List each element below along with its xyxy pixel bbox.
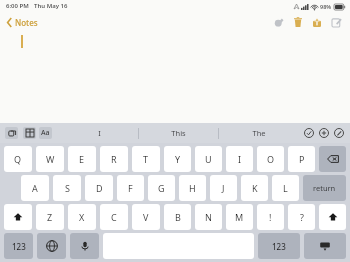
staticText: This xyxy=(171,128,186,138)
staticText: ? xyxy=(300,211,304,223)
staticText: E xyxy=(79,153,85,165)
staticText: U xyxy=(205,153,212,165)
button[interactable]: Shift xyxy=(4,204,32,230)
button[interactable]: Checklist xyxy=(303,127,315,139)
staticText: The xyxy=(252,128,266,138)
staticText: P xyxy=(299,153,305,165)
button[interactable]: New note xyxy=(328,14,344,30)
button[interactable]: 123 xyxy=(258,233,300,259)
staticText: G xyxy=(158,182,165,194)
staticText: K xyxy=(252,182,258,194)
button[interactable]: J xyxy=(210,175,237,201)
button[interactable]: Hide keyboard xyxy=(304,233,346,259)
button[interactable]: Notes xyxy=(4,15,41,30)
staticText: 123 xyxy=(272,241,286,252)
button[interactable]: return xyxy=(303,175,346,201)
button[interactable]: B xyxy=(164,204,191,230)
staticText: A xyxy=(32,182,38,194)
staticText: X xyxy=(79,211,85,223)
button[interactable]: Z xyxy=(36,204,64,230)
staticText: Q xyxy=(14,153,22,165)
button[interactable]: Undo xyxy=(5,127,18,139)
staticText: M xyxy=(235,211,244,223)
button[interactable]: Y xyxy=(164,146,191,172)
button[interactable]: Change keyboard xyxy=(37,233,66,259)
button[interactable]: E xyxy=(68,146,96,172)
button[interactable]: P xyxy=(288,146,315,172)
button[interactable]: Draw xyxy=(333,127,345,139)
button[interactable]: F xyxy=(117,175,144,201)
staticText: N xyxy=(205,211,212,223)
staticText: Aa xyxy=(41,128,50,138)
button[interactable]: Q xyxy=(4,146,32,172)
staticText: O xyxy=(267,153,275,165)
button[interactable]: Text format xyxy=(39,127,52,139)
button[interactable]: ? xyxy=(288,204,315,230)
staticText: L xyxy=(283,182,288,194)
staticText: Thu May 16 xyxy=(34,2,68,10)
button[interactable]: O xyxy=(257,146,284,172)
staticText: ! xyxy=(269,211,272,223)
staticText: Notes xyxy=(15,17,38,28)
button[interactable]: D xyxy=(85,175,113,201)
staticText: B xyxy=(175,211,181,223)
button[interactable]: W xyxy=(36,146,64,172)
button[interactable]: G xyxy=(148,175,175,201)
staticText: I xyxy=(98,128,101,138)
button[interactable]: H xyxy=(179,175,206,201)
button[interactable]: N xyxy=(195,204,222,230)
staticText: T xyxy=(143,153,149,165)
staticText: S xyxy=(65,182,70,194)
button[interactable]: I xyxy=(226,146,253,172)
button[interactable]: Add attachment xyxy=(318,127,330,139)
button[interactable]: Markup xyxy=(271,14,287,30)
button[interactable]: Backspace xyxy=(319,146,346,172)
staticText: 123 xyxy=(12,241,26,252)
staticText: R xyxy=(111,153,117,165)
button[interactable]: Shift right xyxy=(319,204,346,230)
button[interactable]: The xyxy=(219,123,298,143)
button[interactable]: U xyxy=(195,146,222,172)
button[interactable]: L xyxy=(272,175,299,201)
staticText: H xyxy=(189,182,196,194)
button[interactable]: A xyxy=(21,175,49,201)
button[interactable]: ! xyxy=(257,204,284,230)
button[interactable]: This xyxy=(139,123,218,143)
button[interactable]: M xyxy=(226,204,253,230)
button[interactable]: Dictation xyxy=(70,233,99,259)
staticText: 98% xyxy=(320,3,332,10)
button[interactable]: C xyxy=(100,204,128,230)
button[interactable]: Insert table xyxy=(23,127,36,139)
staticText: C xyxy=(111,211,117,223)
staticText: return xyxy=(313,183,336,193)
staticText: 6:00 PM xyxy=(6,2,29,10)
button[interactable]: Delete xyxy=(290,14,306,30)
staticText: Y xyxy=(175,153,181,165)
staticText: F xyxy=(128,182,133,194)
button[interactable]: T xyxy=(132,146,160,172)
staticText: I xyxy=(238,153,242,165)
staticText: W xyxy=(46,153,55,165)
button[interactable]: R xyxy=(100,146,128,172)
staticText: D xyxy=(96,182,103,194)
button[interactable]: Share xyxy=(309,14,325,30)
button[interactable]: V xyxy=(132,204,160,230)
button[interactable]: K xyxy=(241,175,268,201)
button[interactable]: I xyxy=(60,123,138,143)
staticText: V xyxy=(143,211,149,223)
button[interactable]: 123 xyxy=(4,233,33,259)
staticText: J xyxy=(222,182,225,194)
staticText: Z xyxy=(47,211,53,223)
button[interactable]: X xyxy=(68,204,96,230)
button[interactable]: S xyxy=(53,175,81,201)
